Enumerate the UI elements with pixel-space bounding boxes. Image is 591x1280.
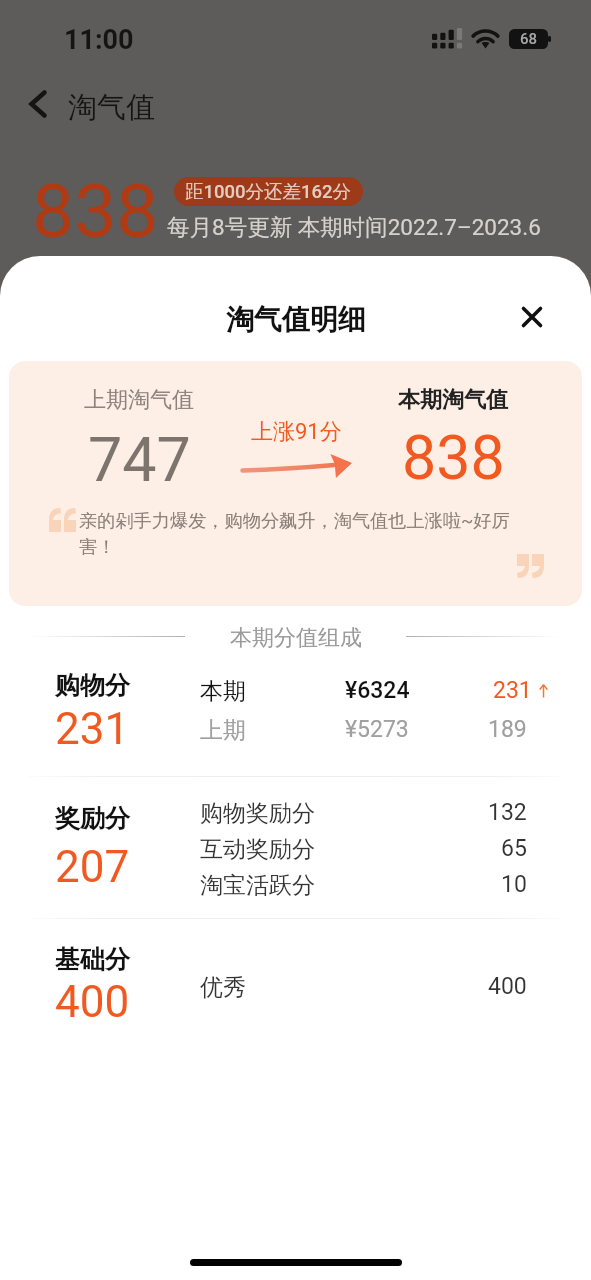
staticText: ¥5273 [345, 716, 409, 743]
staticText: 淘气值 [68, 89, 155, 126]
staticText: 189 [488, 716, 527, 743]
staticText: 上涨91分 [251, 418, 342, 446]
staticText: 奖励分 [55, 803, 130, 834]
staticText: 400 [55, 976, 130, 1028]
button[interactable]: Close [514, 299, 550, 335]
staticText: 10 [501, 871, 527, 898]
staticText: 838 [32, 167, 159, 255]
staticText: 购物分 [55, 670, 130, 701]
staticText: 400 [488, 973, 527, 1000]
staticText: 上期 [200, 716, 246, 745]
staticText: 距1000分还差162分 [185, 180, 352, 203]
staticText: 淘宝活跃分 [200, 871, 315, 900]
staticText: 747 [88, 424, 191, 495]
staticText: 购物奖励分 [200, 799, 315, 828]
staticText: 68 [520, 30, 538, 48]
staticText: 65 [501, 835, 527, 862]
staticText: 亲的剁手力爆发，购物分飙升，淘气值也上涨啦~好厉害！ [79, 509, 523, 558]
staticText: 本期 [200, 677, 246, 706]
staticText: 231 [493, 677, 532, 704]
staticText: 基础分 [55, 944, 130, 975]
staticText: 每月8号更新 本期时间2022.7–2023.6 [167, 213, 541, 241]
staticText: 231 [55, 703, 130, 755]
staticText: 优秀 [200, 973, 246, 1002]
staticText: 本期分值组成 [230, 624, 362, 648]
staticText: 淘气值明细 [226, 302, 366, 337]
staticText: 上期淘气值 [84, 386, 194, 414]
staticText: 132 [488, 799, 527, 826]
staticText: ¥6324 [345, 677, 410, 704]
staticText: 本期淘气值 [398, 386, 508, 414]
button[interactable]: Back [18, 84, 58, 124]
staticText: 207 [55, 841, 130, 893]
staticText: 838 [402, 422, 505, 493]
staticText: 互动奖励分 [200, 835, 315, 864]
staticText: 11:00 [64, 24, 134, 56]
